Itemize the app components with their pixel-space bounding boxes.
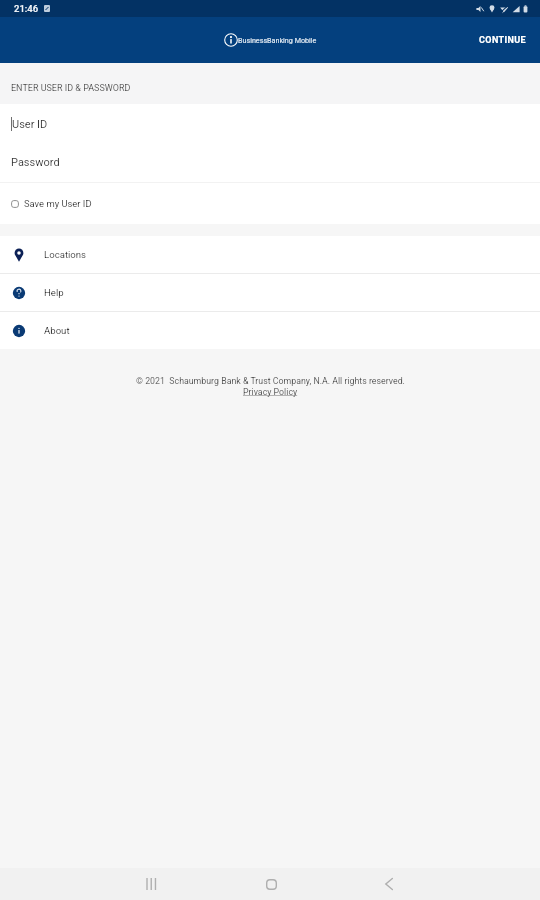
button[interactable]: Home [255, 868, 287, 900]
staticText: About [44, 325, 70, 336]
staticText: Locations [44, 249, 87, 260]
staticText: Save my User ID [24, 198, 92, 209]
button[interactable]: User ID [0, 104, 540, 143]
staticText: Help [44, 287, 64, 298]
button[interactable]: Help [0, 274, 540, 311]
staticText: User ID [12, 118, 48, 131]
button[interactable]: About [0, 312, 540, 349]
staticText: Password [11, 156, 60, 169]
button[interactable]: Recent apps [135, 868, 167, 900]
button[interactable]: Locations [0, 236, 540, 273]
button[interactable]: Back [373, 868, 405, 900]
button[interactable]: Privacy Policy [243, 387, 298, 397]
staticText: CONTINUE [479, 35, 527, 46]
staticText: 21:46 [14, 3, 39, 14]
staticText: © 2021 Schaumburg Bank & Trust Company, … [136, 376, 405, 386]
staticText: ENTER USER ID & PASSWORD [11, 83, 131, 94]
button[interactable]: Password [0, 143, 540, 182]
staticText: BusinessBanking Mobile [238, 36, 317, 44]
button[interactable]: Save my User ID [0, 183, 540, 224]
button[interactable]: CONTINUE [466, 23, 540, 58]
